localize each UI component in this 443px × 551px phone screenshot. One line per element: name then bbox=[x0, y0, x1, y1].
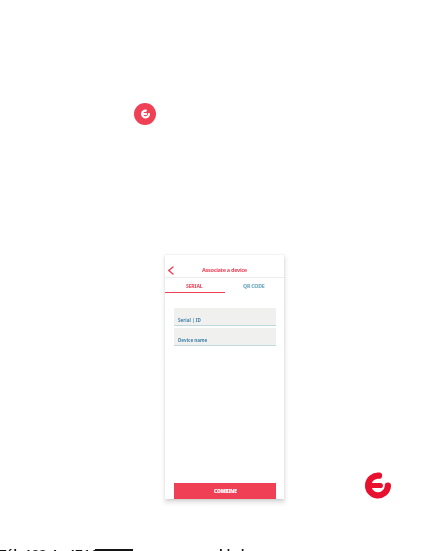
staticText: Tél. 123 4 : 4711 43 bbox=[0, 545, 116, 551]
staticText: Associate a device bbox=[202, 266, 247, 274]
staticText: QR CODE bbox=[243, 282, 265, 289]
staticText: COMBINE bbox=[214, 488, 237, 495]
button[interactable]: Logo bbox=[365, 472, 391, 499]
staticText: SERIAL bbox=[186, 282, 203, 289]
staticText: Device name bbox=[178, 337, 208, 343]
staticText: Serial | ID bbox=[178, 317, 201, 323]
button[interactable]: Back bbox=[165, 265, 176, 276]
button[interactable]: Logo bbox=[134, 103, 156, 125]
button[interactable]: COMBINE bbox=[174, 483, 276, 499]
staticText: l.l. l bbox=[219, 545, 245, 551]
button[interactable]: QR CODE bbox=[224, 278, 284, 293]
button[interactable]: SERIAL bbox=[165, 278, 224, 293]
